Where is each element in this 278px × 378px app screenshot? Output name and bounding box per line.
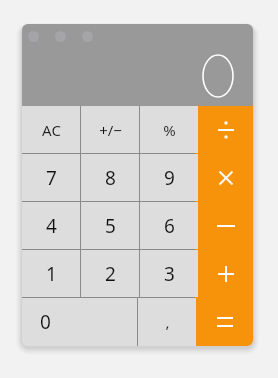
staticText: 1: [46, 261, 57, 287]
staticText: 5: [105, 213, 116, 239]
button[interactable]: 0: [22, 298, 137, 346]
button[interactable]: 1: [22, 250, 80, 298]
button[interactable]: 4: [22, 202, 80, 250]
button[interactable]: 8: [81, 154, 139, 202]
button[interactable]: 7: [22, 154, 80, 202]
button[interactable]: Minimize: [55, 31, 66, 42]
staticText: 9: [164, 165, 175, 191]
staticText: %: [163, 120, 176, 140]
staticText: 2: [105, 261, 116, 287]
button[interactable]: Divide: [199, 106, 253, 154]
staticText: +/−: [99, 120, 122, 140]
button[interactable]: %: [140, 106, 198, 154]
button[interactable]: AC: [22, 106, 80, 154]
staticText: 4: [46, 213, 57, 239]
staticText: 8: [105, 165, 116, 191]
button[interactable]: Equals: [197, 298, 253, 346]
button[interactable]: Add: [199, 250, 253, 298]
staticText: ,: [165, 312, 170, 332]
button[interactable]: 5: [81, 202, 139, 250]
button[interactable]: 2: [81, 250, 139, 298]
button[interactable]: Subtract: [199, 202, 253, 250]
staticText: 6: [164, 213, 175, 239]
staticText: AC: [42, 120, 61, 140]
staticText: 3: [164, 261, 175, 287]
button[interactable]: 6: [140, 202, 198, 250]
staticText: 7: [46, 165, 57, 191]
staticText: 0: [40, 309, 51, 335]
button[interactable]: ,: [138, 298, 196, 346]
button[interactable]: +/−: [81, 106, 139, 154]
button[interactable]: Close: [28, 31, 39, 42]
button[interactable]: Multiply: [199, 154, 253, 202]
button[interactable]: 9: [140, 154, 198, 202]
button[interactable]: 3: [140, 250, 198, 298]
button[interactable]: Zoom: [82, 31, 93, 42]
